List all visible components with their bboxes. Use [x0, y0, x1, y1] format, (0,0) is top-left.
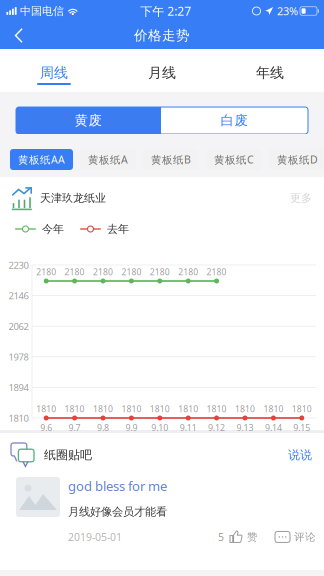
staticText: 2062: [8, 320, 28, 333]
staticText: 1810: [121, 403, 141, 415]
staticText: 黄废: [74, 112, 102, 129]
staticText: 9.13: [236, 421, 253, 433]
staticText: 白废: [220, 112, 248, 129]
staticText: 9.11: [180, 421, 197, 433]
staticText: 9.9: [125, 421, 137, 433]
staticText: 中国电信: [20, 4, 64, 18]
staticText: 2180: [150, 266, 170, 278]
staticText: 下午 2:27: [140, 3, 191, 19]
button[interactable]: 黄废: [16, 107, 161, 134]
staticText: 黄板纸B: [151, 152, 191, 167]
staticText: 说说: [288, 447, 312, 462]
staticText: 1894: [8, 381, 28, 394]
staticText: 年线: [256, 64, 284, 82]
staticText: 更多: [290, 191, 312, 205]
staticText: 2019-05-01: [68, 530, 122, 544]
button[interactable]: 黄板纸B: [143, 149, 199, 170]
button[interactable]: 黄板纸D: [269, 149, 324, 170]
button[interactable]: 黄板纸A: [80, 149, 136, 170]
button[interactable]: 白废: [161, 107, 308, 134]
button[interactable]: 更多: [290, 191, 312, 205]
staticText: 黄板纸A: [88, 152, 128, 167]
staticText: 9.14: [265, 421, 282, 433]
staticText: 1978: [8, 350, 28, 363]
button[interactable]: 说说: [288, 447, 312, 462]
staticText: 月线: [148, 64, 176, 82]
staticText: 1810: [235, 403, 255, 415]
staticText: 9.10: [151, 421, 168, 433]
staticText: 周线: [40, 64, 68, 82]
button[interactable]: god bless for me: [0, 477, 324, 544]
staticText: 1810: [150, 403, 170, 415]
staticText: 去年: [107, 222, 129, 236]
staticText: 黄板纸C: [214, 152, 254, 167]
staticText: 1810: [65, 403, 85, 415]
staticText: 黄板纸D: [277, 152, 318, 167]
staticText: 9.12: [208, 421, 225, 433]
staticText: 1810: [36, 403, 56, 415]
button[interactable]: 年线: [216, 49, 324, 92]
staticText: 2180: [65, 266, 85, 278]
button[interactable]: 月线: [108, 49, 216, 92]
staticText: 价格走势: [134, 27, 190, 44]
staticText: 2180: [178, 266, 198, 278]
staticText: 5: [218, 530, 224, 544]
staticText: 赞: [247, 530, 258, 544]
button[interactable]: 黄板纸AA: [10, 149, 73, 170]
staticText: 1810: [263, 403, 283, 415]
button[interactable]: Back: [0, 22, 38, 49]
staticText: 9.8: [97, 421, 109, 433]
staticText: 今年: [42, 222, 64, 236]
staticText: 1810: [292, 403, 312, 415]
button[interactable]: 黄板纸C: [206, 149, 262, 170]
staticText: 黄板纸AA: [18, 152, 65, 167]
staticText: 1810: [207, 403, 227, 415]
staticText: 23%: [277, 3, 298, 18]
staticText: 评论: [294, 530, 316, 544]
staticText: 1810: [178, 403, 198, 415]
button[interactable]: 周线: [0, 49, 108, 92]
staticText: 2230: [8, 258, 28, 271]
staticText: 2180: [207, 266, 227, 278]
staticText: 9.15: [293, 421, 310, 433]
staticText: 2180: [121, 266, 141, 278]
staticText: 2146: [8, 289, 28, 302]
staticText: 月线好像会员才能看: [68, 505, 167, 519]
staticText: 1810: [93, 403, 113, 415]
staticText: 2180: [93, 266, 113, 278]
staticText: 9.7: [69, 421, 81, 433]
staticText: god bless for me: [68, 477, 167, 495]
staticText: 1810: [8, 411, 28, 424]
staticText: 纸圈贴吧: [44, 447, 92, 462]
staticText: 9.6: [40, 421, 52, 433]
staticText: 2180: [36, 266, 56, 278]
staticText: 天津玖龙纸业: [40, 191, 106, 205]
